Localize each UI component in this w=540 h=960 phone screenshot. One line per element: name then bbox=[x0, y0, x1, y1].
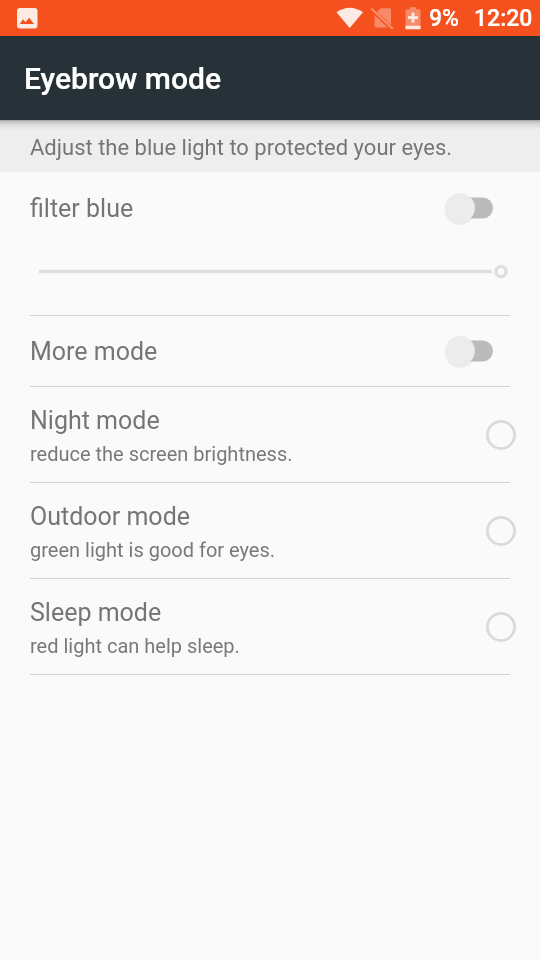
staticText: 12:20 bbox=[474, 5, 533, 32]
staticText: green light is good for eyes. bbox=[30, 538, 276, 561]
button[interactable]: Select Outdoor mode bbox=[479, 509, 523, 553]
staticText: More mode bbox=[30, 337, 433, 366]
staticText: reduce the screen brightness. bbox=[30, 442, 293, 465]
staticText: 9% bbox=[429, 5, 459, 32]
button[interactable]: Night mode bbox=[0, 387, 540, 482]
staticText: filter blue bbox=[30, 194, 433, 223]
button[interactable]: Select Sleep mode bbox=[479, 605, 523, 649]
button[interactable]: Select Night mode bbox=[479, 413, 523, 457]
button[interactable]: Blue light intensity bbox=[0, 243, 540, 315]
staticText: red light can help sleep. bbox=[30, 634, 240, 657]
button[interactable]: Toggle filter blue bbox=[433, 184, 495, 232]
button[interactable]: More mode bbox=[0, 316, 540, 386]
button[interactable]: filter blue bbox=[0, 172, 540, 243]
button[interactable]: Outdoor mode bbox=[0, 483, 540, 578]
staticText: Outdoor mode bbox=[30, 502, 190, 531]
staticText: Adjust the blue light to protected your … bbox=[30, 135, 453, 161]
button[interactable]: Toggle more mode bbox=[433, 327, 495, 375]
staticText: Eyebrow mode bbox=[24, 61, 222, 96]
button[interactable]: Sleep mode bbox=[0, 579, 540, 674]
staticText: Night mode bbox=[30, 406, 160, 435]
staticText: Sleep mode bbox=[30, 598, 162, 627]
